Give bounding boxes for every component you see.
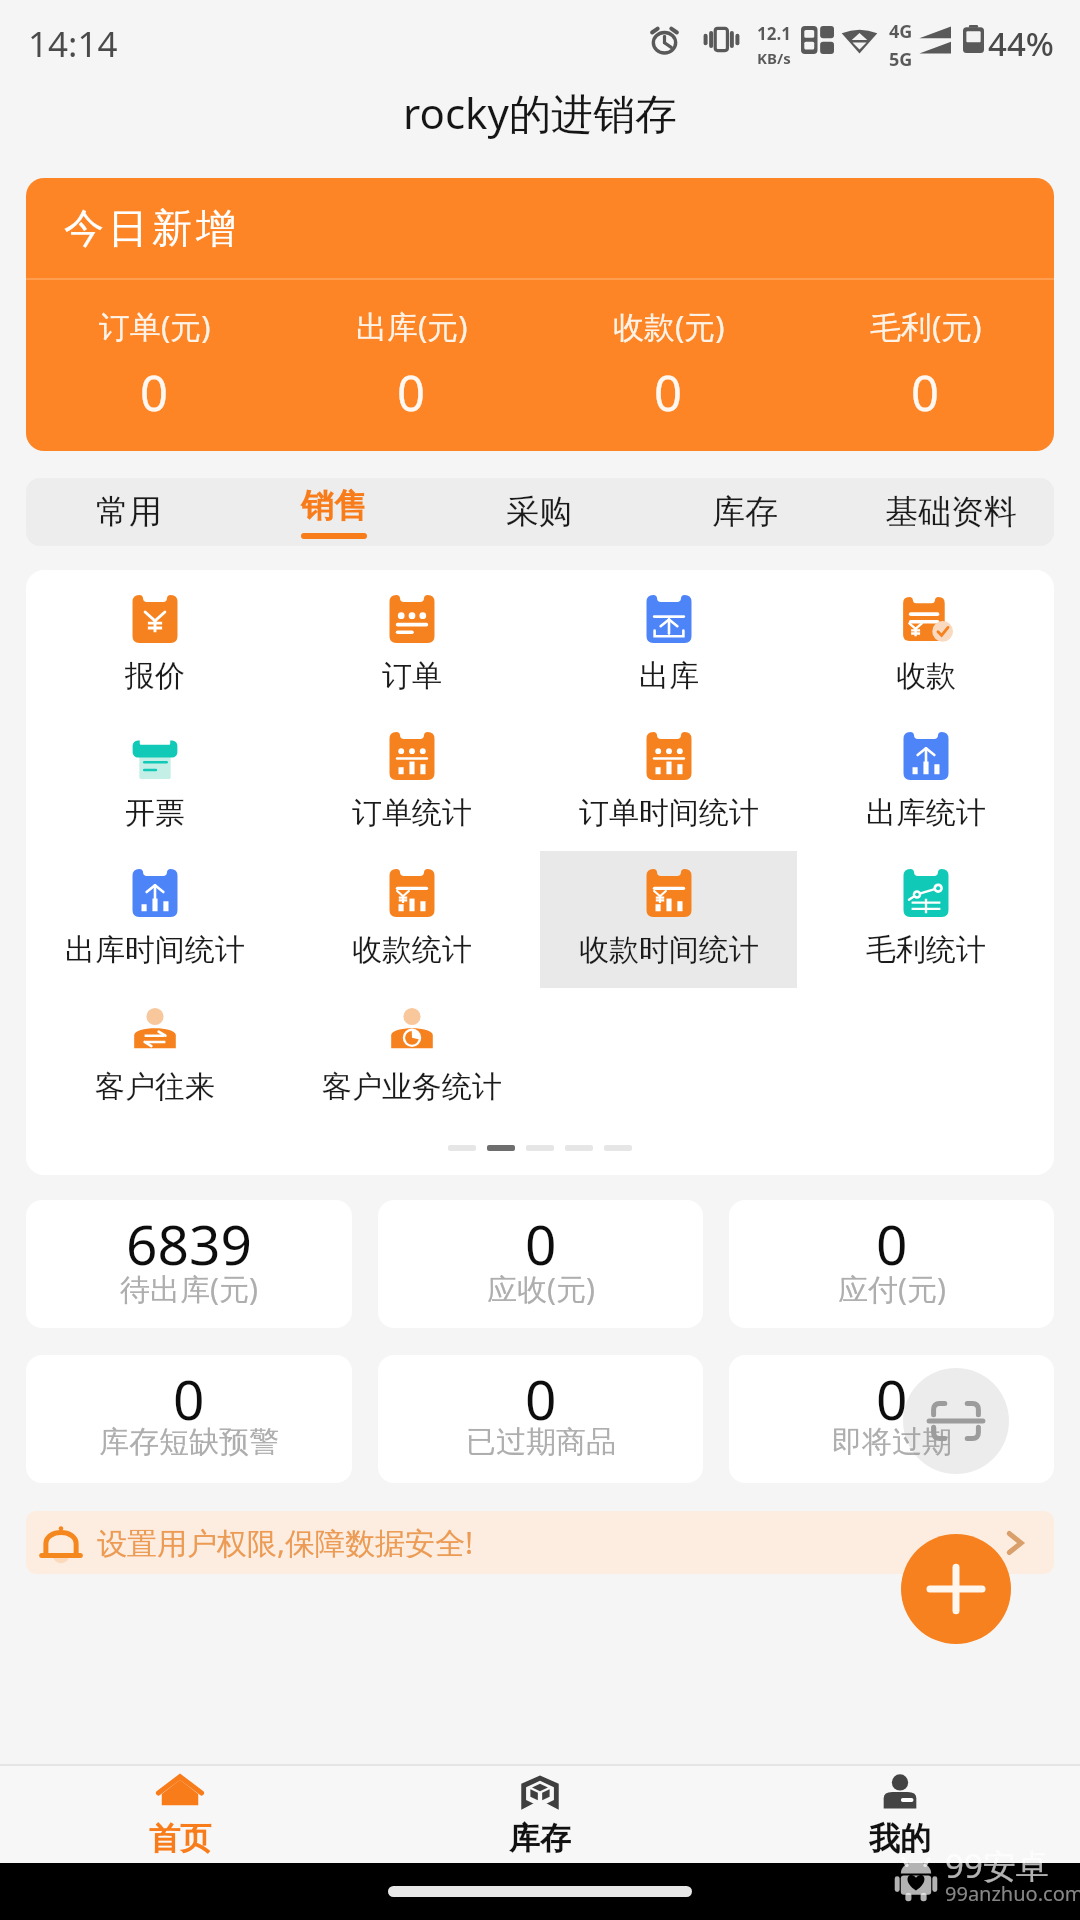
staticText: 出库时间统计	[65, 931, 245, 969]
staticText: 5G	[889, 47, 913, 72]
button[interactable]: 订单时间统计	[540, 714, 797, 851]
staticText: 订单(元)	[99, 305, 211, 347]
button[interactable]: 常用	[26, 478, 231, 546]
button[interactable]: 0	[378, 1355, 703, 1483]
button[interactable]: 订单	[283, 577, 540, 714]
staticText: 0	[911, 359, 940, 426]
staticText: 0	[876, 1206, 908, 1281]
button[interactable]: 首页	[0, 1766, 360, 1863]
button[interactable]: 0	[729, 1355, 1054, 1483]
staticText: 14:14	[28, 20, 118, 68]
button[interactable]: 今日新增	[26, 178, 1054, 451]
staticText: 采购	[506, 491, 572, 533]
staticText: 开票	[125, 794, 185, 832]
button[interactable]: 收款	[797, 577, 1054, 714]
staticText: 销售	[301, 485, 367, 527]
staticText: 99安卓	[945, 1843, 1049, 1888]
staticText: 0	[397, 359, 426, 426]
button[interactable]: 收款时间统计	[540, 851, 797, 988]
staticText: 毛利统计	[866, 931, 986, 969]
staticText: 订单	[382, 657, 442, 695]
button[interactable]: 设置用户权限,保障数据安全!	[26, 1511, 1054, 1574]
button[interactable]: 库存	[642, 478, 848, 546]
staticText: 我的	[869, 1819, 931, 1858]
staticText: KB/s	[757, 48, 791, 68]
button[interactable]: 开票	[26, 714, 283, 851]
button[interactable]: 0	[26, 1355, 352, 1483]
button[interactable]: 0	[729, 1200, 1054, 1328]
button[interactable]: 订单统计	[283, 714, 540, 851]
staticText: 0	[140, 359, 169, 426]
staticText: 客户业务统计	[322, 1068, 502, 1106]
staticText: 常用	[96, 491, 162, 533]
staticText: 出库	[639, 657, 699, 695]
staticText: 0	[525, 1206, 557, 1281]
button[interactable]: 报价	[26, 577, 283, 714]
staticText: 出库统计	[866, 794, 986, 832]
button[interactable]: 客户业务统计	[283, 988, 540, 1125]
button[interactable]: 客户往来	[26, 988, 283, 1125]
staticText: 应付(元)	[838, 1268, 946, 1309]
staticText: 收款时间统计	[579, 931, 759, 969]
staticText: 12.1	[757, 22, 791, 45]
staticText: 4G	[889, 19, 913, 44]
staticText: 即将过期	[832, 1423, 952, 1461]
button[interactable]: 库存	[360, 1766, 720, 1863]
staticText: 0	[654, 359, 683, 426]
staticText: 收款统计	[352, 931, 472, 969]
button[interactable]: 6839	[26, 1200, 352, 1328]
staticText: 客户往来	[95, 1068, 215, 1106]
button[interactable]: Add	[901, 1534, 1011, 1644]
button[interactable]: Scan	[903, 1368, 1009, 1474]
button[interactable]: 出库统计	[797, 714, 1054, 851]
staticText: 6839	[126, 1206, 252, 1281]
staticText: 报价	[125, 657, 185, 695]
staticText: 应收(元)	[487, 1268, 595, 1309]
staticText: 设置用户权限,保障数据安全!	[97, 1522, 474, 1563]
staticText: 今日新增	[62, 203, 238, 253]
button[interactable]: 出库时间统计	[26, 851, 283, 988]
staticText: 44%	[988, 21, 1054, 66]
staticText: 库存	[712, 491, 778, 533]
staticText: 99anzhuo.com	[945, 1880, 1080, 1907]
staticText: 0	[525, 1361, 557, 1436]
button[interactable]: 0	[378, 1200, 703, 1328]
staticText: 收款(元)	[613, 305, 725, 347]
staticText: rocky的进销存	[403, 84, 677, 141]
staticText: 0	[173, 1361, 205, 1436]
button[interactable]: 我的	[720, 1766, 1080, 1863]
staticText: 0	[876, 1361, 908, 1436]
button[interactable]: 基础资料	[848, 478, 1054, 546]
staticText: 库存短缺预警	[99, 1423, 279, 1461]
button[interactable]: 毛利统计	[797, 851, 1054, 988]
button[interactable]: 采购	[436, 478, 642, 546]
staticText: 基础资料	[885, 491, 1017, 533]
staticText: 已过期商品	[466, 1423, 616, 1461]
button[interactable]: 销售	[231, 478, 436, 546]
button[interactable]: 收款统计	[283, 851, 540, 988]
staticText: 出库(元)	[356, 305, 468, 347]
staticText: 收款	[896, 657, 956, 695]
staticText: 待出库(元)	[120, 1268, 258, 1309]
staticText: 订单时间统计	[579, 794, 759, 832]
button[interactable]: 出库	[540, 577, 797, 714]
staticText: 首页	[149, 1819, 211, 1858]
staticText: 毛利(元)	[870, 305, 982, 347]
staticText: 订单统计	[352, 794, 472, 832]
staticText: 库存	[509, 1819, 571, 1858]
